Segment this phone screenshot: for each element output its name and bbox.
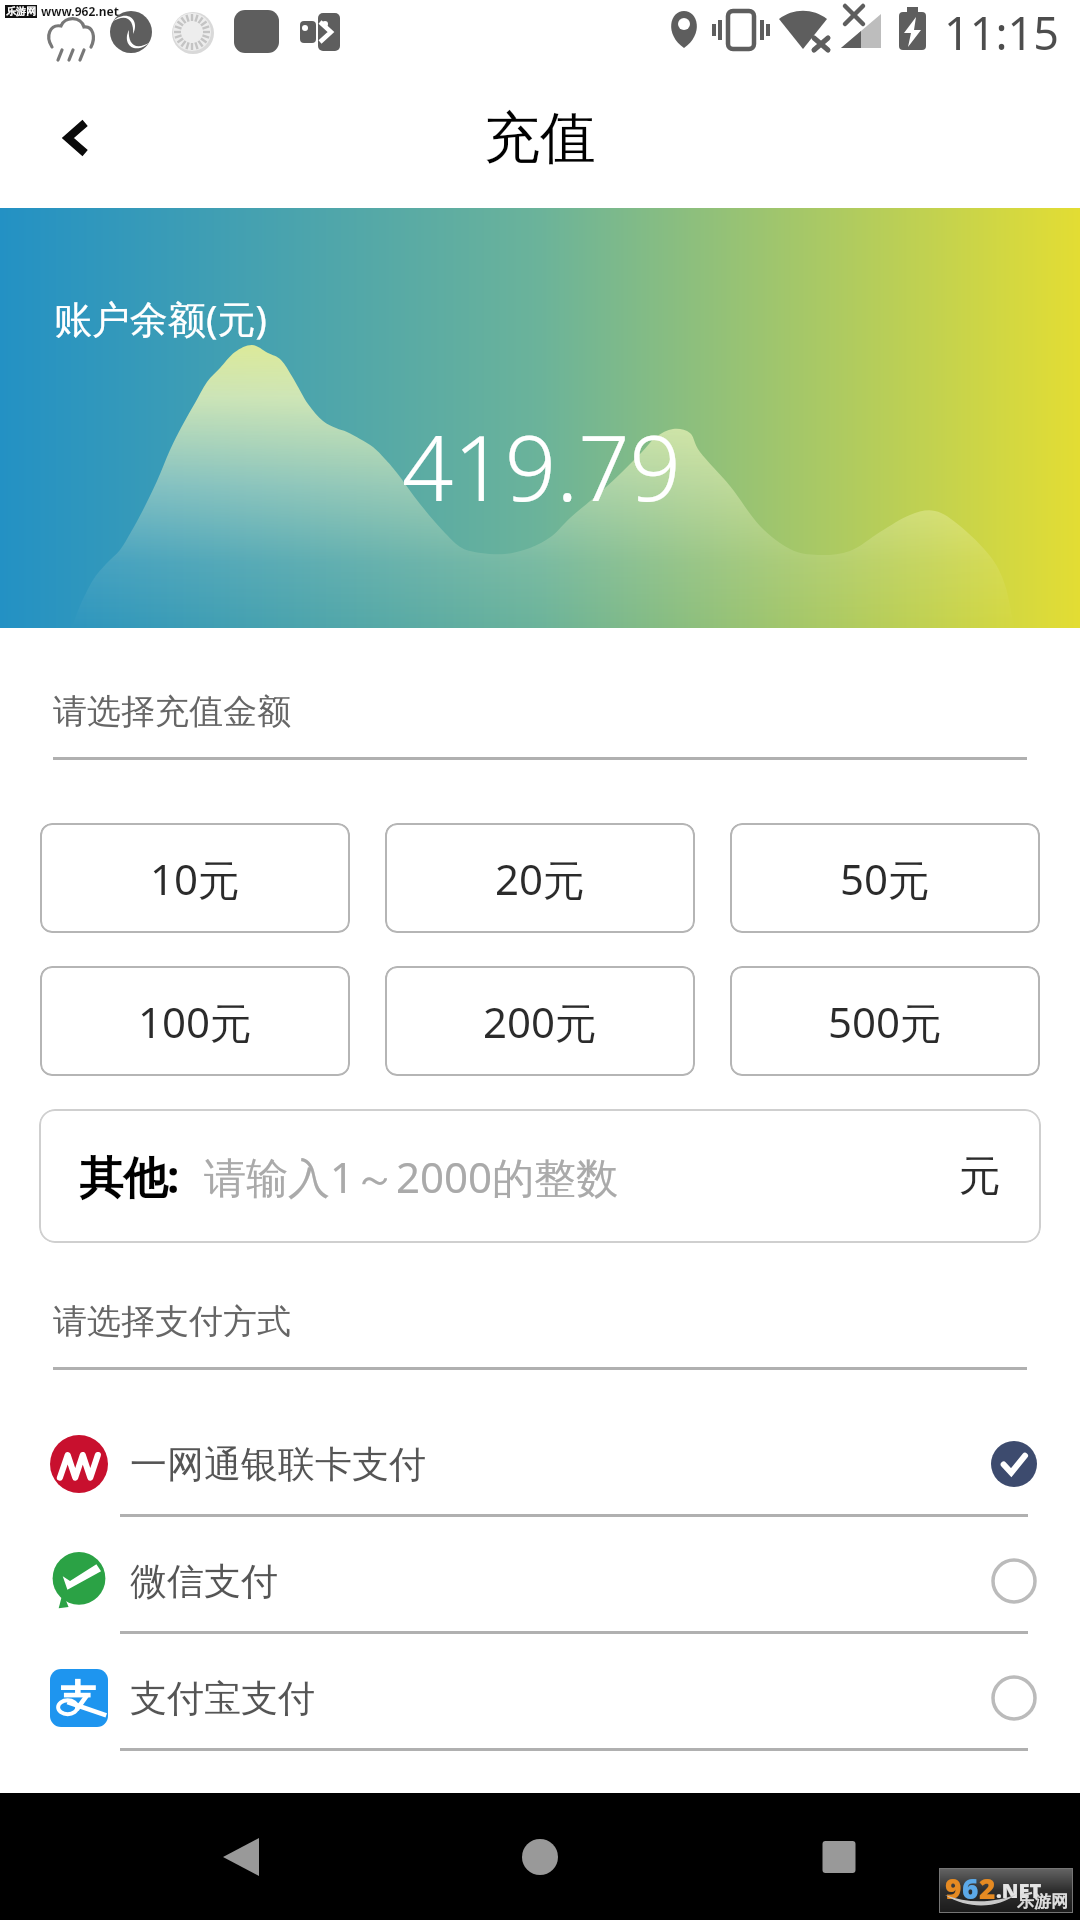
staticText: 11:15	[944, 2, 1060, 63]
staticText: 一网通银联卡支付	[130, 1441, 426, 1488]
button[interactable]: 500元	[730, 966, 1040, 1076]
button[interactable]: Home	[480, 1797, 600, 1917]
button[interactable]: Back	[26, 88, 126, 188]
button[interactable]: 100元	[40, 966, 350, 1076]
staticText: 2	[979, 1869, 996, 1907]
staticText: 20元	[495, 850, 586, 907]
staticText: 元	[959, 1150, 1001, 1203]
button[interactable]: 一网通银联卡支付	[0, 1400, 1080, 1517]
staticText: www.962.net	[41, 3, 119, 19]
staticText: 419.79	[402, 405, 681, 528]
staticText: 请输入1～2000的整数	[204, 1148, 619, 1205]
button[interactable]: 微信支付	[0, 1517, 1080, 1634]
staticText: 6	[962, 1869, 979, 1907]
button[interactable]: Recent apps	[779, 1797, 899, 1917]
button[interactable]: 支付宝支付	[0, 1634, 1080, 1751]
staticText: 500元	[828, 993, 943, 1050]
staticText: 100元	[138, 993, 253, 1050]
button[interactable]: Back	[181, 1797, 301, 1917]
staticText: 乐游网	[1017, 1891, 1068, 1912]
staticText: 200元	[483, 993, 598, 1050]
staticText: 充值	[484, 103, 596, 174]
staticText: 50元	[840, 850, 931, 907]
button[interactable]: 10元	[40, 823, 350, 933]
staticText: 账户余额(元)	[54, 292, 267, 344]
staticText: 请选择支付方式	[53, 1300, 291, 1343]
button[interactable]: 200元	[385, 966, 695, 1076]
button[interactable]: 其他:	[39, 1109, 1041, 1243]
staticText: 其他:	[79, 1146, 180, 1206]
staticText: 乐游网	[6, 5, 36, 18]
staticText: 支付宝支付	[130, 1675, 315, 1722]
button[interactable]: 50元	[730, 823, 1040, 933]
staticText: .NET	[996, 1877, 1042, 1904]
staticText: 10元	[150, 850, 241, 907]
button[interactable]: 20元	[385, 823, 695, 933]
staticText: 微信支付	[130, 1558, 278, 1605]
staticText: 请选择充值金额	[53, 690, 291, 733]
staticText: 9	[945, 1869, 962, 1907]
